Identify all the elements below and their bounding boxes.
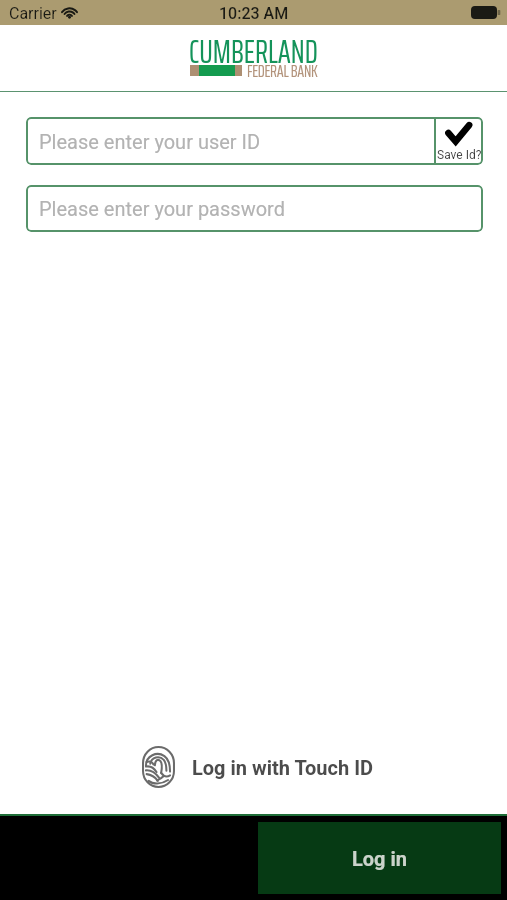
button[interactable]: Log in: [258, 822, 501, 894]
staticText: 10:23 AM: [219, 4, 289, 23]
button[interactable]: Please enter your password: [26, 185, 483, 232]
button[interactable]: Save Id: [436, 117, 483, 165]
staticText: CUMBERLAND: [189, 27, 318, 77]
staticText: Please enter your password: [39, 197, 285, 220]
staticText: Log in with Touch ID: [192, 756, 374, 779]
staticText: Please enter your user ID: [39, 130, 261, 153]
staticText: FEDERAL BANK: [247, 58, 318, 85]
button[interactable]: Please enter your user ID: [26, 117, 434, 165]
staticText: Log in: [352, 847, 408, 870]
staticText: Carrier: [9, 4, 57, 23]
staticText: Save Id?: [437, 148, 482, 162]
button[interactable]: Log in with Touch ID: [142, 746, 374, 788]
